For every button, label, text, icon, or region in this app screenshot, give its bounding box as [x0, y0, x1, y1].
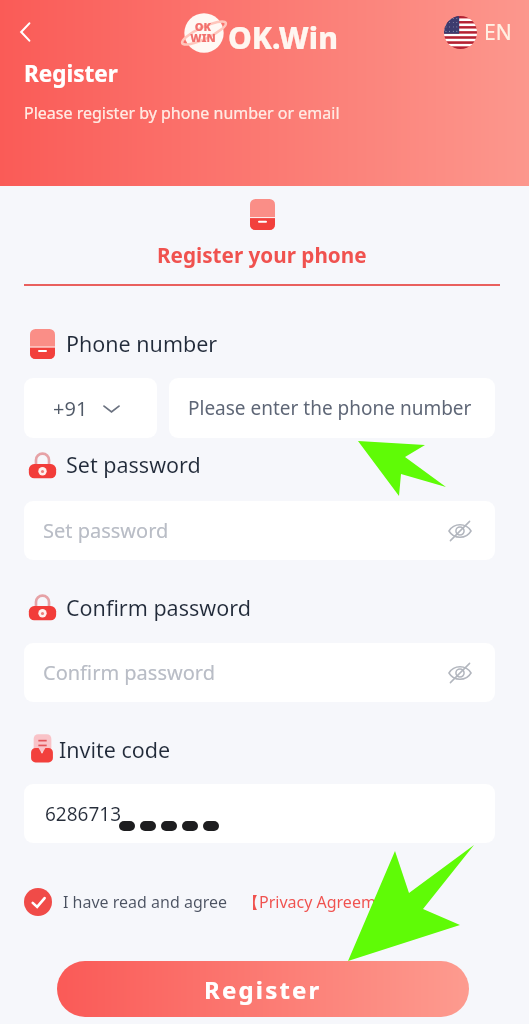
button[interactable]: Please enter the phone number: [169, 378, 495, 438]
button[interactable]: Confirm password: [24, 643, 495, 702]
staticText: Phone number: [66, 329, 218, 358]
staticText: EN: [484, 18, 512, 47]
button[interactable]: Register your phone: [24, 193, 500, 291]
staticText: Register: [204, 973, 322, 1006]
staticText: I have read and agree: [63, 891, 228, 913]
staticText: OK.Win: [228, 17, 338, 58]
staticText: Confirm password: [43, 659, 215, 686]
staticText: Please enter the phone number: [188, 395, 472, 421]
staticText: 6286713: [45, 801, 122, 827]
button[interactable]: Register: [57, 961, 469, 1017]
staticText: Please register by phone number or email: [24, 102, 340, 124]
staticText: OK WIN: [190, 19, 216, 45]
staticText: Confirm password: [66, 593, 251, 622]
button[interactable]: I agree checkbox: [24, 888, 52, 916]
staticText: Set password: [66, 450, 201, 479]
button[interactable]: Toggle password visibility: [443, 514, 477, 548]
staticText: Register: [24, 58, 118, 89]
staticText: +91: [53, 395, 88, 422]
button[interactable]: Set password: [24, 501, 495, 560]
staticText: Register your phone: [157, 241, 367, 269]
staticText: Set password: [43, 517, 169, 544]
button[interactable]: Back: [5, 11, 47, 53]
button[interactable]: 6286713: [24, 784, 495, 843]
button[interactable]: 【Privacy Agreement】: [243, 891, 417, 913]
staticText: Invite code: [59, 735, 171, 764]
button[interactable]: Toggle password visibility: [443, 656, 477, 690]
button[interactable]: +91: [24, 378, 157, 438]
button[interactable]: Language EN: [444, 16, 512, 49]
